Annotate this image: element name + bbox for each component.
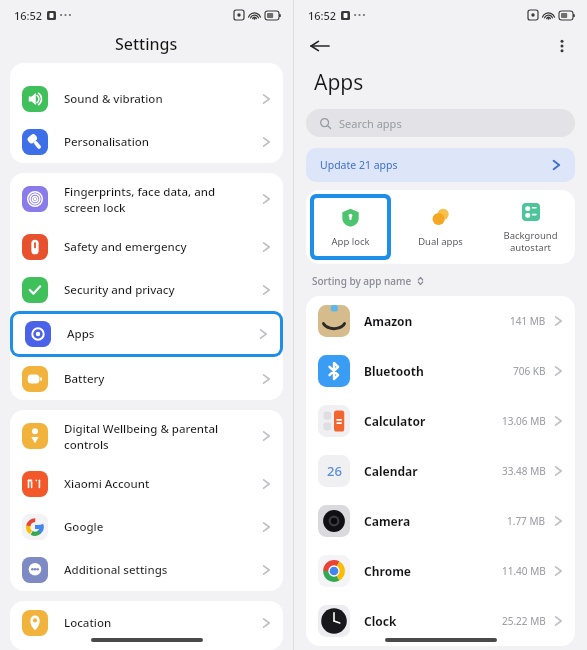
staticText: 1.77 MB [507, 514, 546, 528]
staticText: Xiaomi Account [64, 476, 262, 492]
button[interactable]: Search apps [306, 109, 575, 137]
staticText: 26 [327, 462, 342, 480]
button[interactable]: Google [10, 505, 283, 548]
staticText: 33.48 MB [502, 464, 546, 478]
button[interactable]: Bluetooth [306, 346, 575, 396]
staticText: Amazon [364, 313, 510, 329]
staticText: 141 MB [510, 314, 546, 328]
staticText: Battery [64, 371, 262, 387]
staticText: Sound & vibration [64, 91, 262, 107]
staticText: Settings [115, 33, 178, 55]
staticText: Digital Wellbeing & parental controls [64, 421, 262, 452]
staticText: Apps [67, 326, 259, 342]
button[interactable]: Fingerprints, face data, and screen lock [10, 173, 283, 225]
staticText: Update 21 apps [320, 158, 552, 172]
staticText: Fingerprints, face data, and screen lock [64, 184, 262, 215]
staticText: Dual apps [418, 235, 463, 248]
button[interactable]: App lock [314, 198, 387, 256]
button[interactable]: Apps [13, 314, 280, 354]
staticText: Sorting by app name [312, 274, 412, 288]
button[interactable]: Back [310, 36, 330, 56]
staticText: Background autostart [503, 229, 558, 254]
button[interactable]: Digital Wellbeing & parental controls [10, 410, 283, 462]
button[interactable]: Calculator [306, 396, 575, 446]
button[interactable]: Personalisation [10, 120, 283, 163]
button[interactable]: Camera [306, 496, 575, 546]
staticText: Personalisation [64, 134, 262, 150]
button[interactable]: Battery [10, 357, 283, 400]
staticText: Search apps [339, 116, 402, 131]
button[interactable]: Location [10, 601, 283, 644]
staticText: Safety and emergency [64, 239, 262, 255]
staticText: Calendar [364, 463, 502, 479]
button[interactable]: 26 [306, 446, 575, 496]
staticText: Chrome [364, 563, 502, 579]
staticText: Camera [364, 513, 507, 529]
staticText: Calculator [364, 413, 502, 429]
button[interactable]: Background autostart [485, 190, 575, 264]
staticText: App lock [331, 235, 370, 248]
button[interactable]: Security and privacy [10, 268, 283, 311]
staticText: Additional settings [64, 562, 262, 578]
staticText: Apps [314, 68, 364, 97]
button[interactable]: Dual apps [395, 190, 485, 264]
staticText: 13.06 MB [502, 414, 546, 428]
staticText: Bluetooth [364, 363, 513, 379]
button[interactable]: Sorting by app name [312, 271, 424, 291]
staticText: 16:52 [14, 8, 43, 23]
button[interactable]: Additional settings [10, 548, 283, 591]
button[interactable]: Sound & vibration [10, 77, 283, 120]
staticText: Google [64, 519, 262, 535]
button[interactable]: Chrome [306, 546, 575, 596]
staticText: Clock [364, 613, 502, 629]
staticText: 25.22 MB [502, 614, 546, 628]
button[interactable]: Safety and emergency [10, 225, 283, 268]
staticText: Security and privacy [64, 282, 262, 298]
button[interactable]: Clock [306, 596, 575, 646]
button[interactable]: Amazon [306, 296, 575, 346]
staticText: 16:52 [308, 8, 337, 23]
staticText: 706 KB [513, 364, 546, 378]
button[interactable]: Xiaomi Account [10, 462, 283, 505]
button[interactable]: Update 21 apps [306, 148, 575, 182]
staticText: 11.40 MB [502, 564, 546, 578]
staticText: Location [64, 615, 262, 631]
button[interactable]: More options [555, 39, 569, 53]
